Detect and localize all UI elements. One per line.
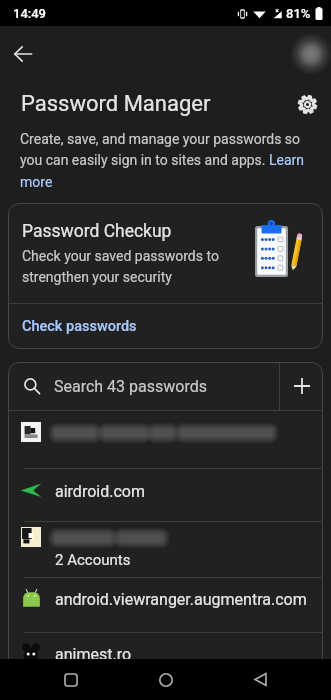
staticText: Password Manager [21, 91, 211, 117]
button[interactable]: Back [3, 34, 43, 74]
staticText: Password Checkup [22, 221, 172, 242]
staticText: 81% [286, 6, 311, 21]
staticText: animest.ro [55, 645, 132, 664]
staticText: android.viewranger.augmentra.com [55, 590, 307, 609]
staticText: Check your saved passwords to strengthen… [22, 248, 257, 285]
button[interactable]: 2 Accounts [8, 522, 323, 577]
button[interactable]: airdroid.com [8, 469, 323, 521]
button[interactable]: Settings [291, 88, 323, 120]
button[interactable]: animest.ro [8, 633, 323, 688]
button[interactable]: Check passwords [8, 304, 323, 349]
button[interactable]: Back [236, 659, 284, 700]
staticText: Search 43 passwords [54, 377, 207, 396]
button[interactable]: Recents [47, 659, 95, 700]
button[interactable]: Search 43 passwords [8, 362, 279, 410]
button[interactable]: Add password [280, 362, 323, 410]
staticText: airdroid.com [55, 482, 145, 501]
staticText: 2 Accounts [55, 551, 131, 569]
button[interactable]: Home [142, 659, 190, 700]
staticText: Create, save, and manage your passwords … [20, 131, 319, 190]
staticText: Check passwords [22, 318, 137, 335]
staticText: 14:49 [13, 6, 46, 21]
button[interactable]: android.viewranger.augmentra.com [8, 578, 323, 632]
button[interactable] [8, 411, 323, 468]
button[interactable]: Account [289, 32, 331, 76]
